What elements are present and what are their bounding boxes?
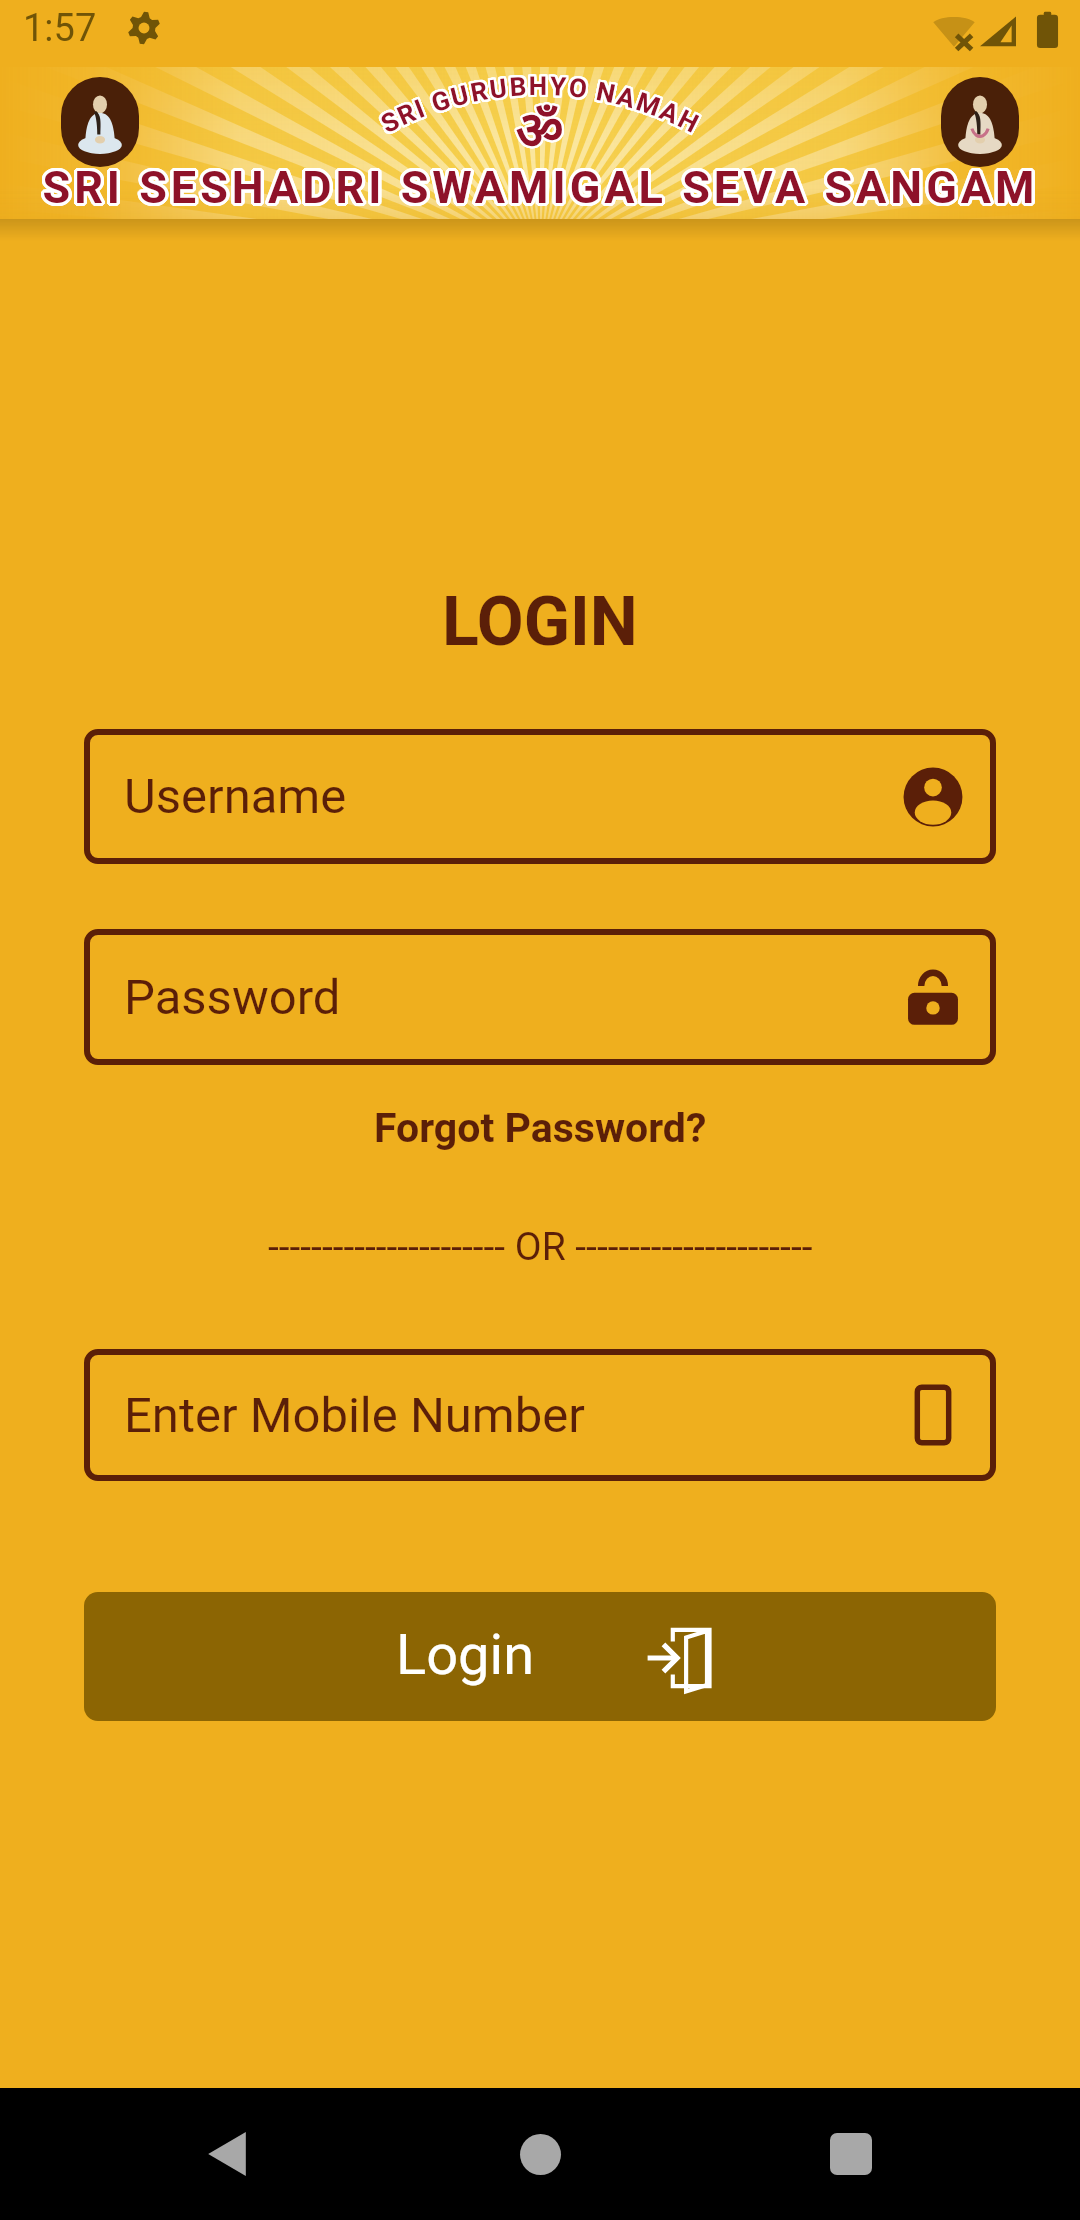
staticText: SRI SESHADRI SWAMIGAL SEVA SANGAM	[43, 163, 1040, 216]
staticText: Forgot Password?	[374, 1104, 707, 1152]
staticText: ॐ	[518, 102, 566, 170]
button[interactable]: Username	[84, 729, 996, 864]
staticText: ॐ	[515, 103, 563, 171]
staticText: Username	[124, 768, 347, 825]
staticText: ॐ	[517, 100, 565, 168]
staticText: SRI SESHADRI SWAMIGAL SEVA SANGAM	[43, 164, 1040, 217]
staticText: ॐ	[514, 100, 562, 168]
staticText: Enter Mobile Number	[124, 1387, 585, 1444]
staticText: Login	[396, 1622, 535, 1688]
staticText: ॐ	[518, 100, 566, 168]
button[interactable]: Back	[167, 2094, 287, 2214]
staticText: ॐ	[516, 103, 564, 171]
staticText: ॐ	[514, 102, 562, 170]
button[interactable]: Password	[84, 929, 996, 1065]
staticText: SRI SESHADRI SWAMIGAL SEVA SANGAM	[40, 162, 1037, 215]
staticText: SRI SESHADRI SWAMIGAL SEVA SANGAM	[43, 159, 1040, 212]
staticText: SRI SESHADRI SWAMIGAL SEVA SANGAM	[40, 163, 1037, 216]
staticText: ॐ	[516, 99, 564, 167]
staticText: SRI SESHADRI SWAMIGAL SEVA SANGAM	[45, 162, 1042, 215]
staticText: SRI SESHADRI SWAMIGAL SEVA SANGAM	[44, 162, 1041, 215]
staticText: ॐ	[517, 102, 565, 170]
staticText: Password	[124, 969, 341, 1026]
staticText: ---------------------- OR --------------…	[268, 1224, 813, 1270]
staticText: SRI SESHADRI SWAMIGAL SEVA SANGAM	[45, 161, 1042, 214]
staticText: SRI SESHADRI SWAMIGAL SEVA SANGAM	[44, 159, 1041, 212]
staticText: SRI SESHADRI SWAMIGAL SEVA SANGAM	[43, 158, 1040, 211]
staticText: 1:57	[23, 6, 97, 51]
staticText: ॐ	[515, 100, 563, 168]
staticText: ॐ	[517, 101, 565, 169]
staticText: SRI SESHADRI SWAMIGAL SEVA SANGAM	[39, 161, 1036, 214]
staticText: SRI SESHADRI SWAMIGAL SEVA SANGAM	[39, 162, 1036, 215]
staticText: ॐ	[516, 101, 564, 169]
staticText: SRI SESHADRI SWAMIGAL SEVA SANGAM	[44, 163, 1041, 216]
button[interactable]: Forgot Password?	[0, 1104, 1080, 1152]
staticText: ॐ	[518, 101, 566, 169]
staticText: SRI SESHADRI SWAMIGAL SEVA SANGAM	[44, 160, 1041, 213]
button[interactable]: Home	[480, 2094, 600, 2214]
button[interactable]: Recents	[791, 2094, 911, 2214]
staticText: ॐ	[515, 101, 563, 169]
staticText: SRI SESHADRI SWAMIGAL SEVA SANGAM	[40, 159, 1037, 212]
button[interactable]: Enter Mobile Number	[84, 1349, 996, 1481]
staticText: SRI SESHADRI SWAMIGAL SEVA SANGAM	[41, 163, 1038, 216]
staticText: ॐ	[517, 99, 565, 167]
staticText: ॐ	[516, 102, 564, 170]
staticText: SRI SESHADRI SWAMIGAL SEVA SANGAM	[41, 158, 1038, 211]
staticText: ॐ	[515, 102, 563, 170]
staticText: SRI SESHADRI SWAMIGAL SEVA SANGAM	[42, 158, 1039, 211]
staticText: SRI SESHADRI SWAMIGAL SEVA SANGAM	[42, 161, 1039, 214]
staticText: ॐ	[516, 100, 564, 168]
staticText: ॐ	[514, 101, 562, 169]
button[interactable]: Login	[84, 1592, 996, 1721]
staticText: SRI SESHADRI SWAMIGAL SEVA SANGAM	[40, 160, 1037, 213]
staticText: SRI SESHADRI SWAMIGAL SEVA SANGAM	[42, 164, 1039, 217]
staticText: LOGIN	[442, 582, 638, 662]
staticText: SRI SESHADRI SWAMIGAL SEVA SANGAM	[41, 164, 1038, 217]
staticText: SRI SESHADRI SWAMIGAL SEVA SANGAM	[39, 160, 1036, 213]
staticText: SRI SESHADRI SWAMIGAL SEVA SANGAM	[41, 159, 1038, 212]
staticText: ॐ	[515, 99, 563, 167]
staticText: SRI SESHADRI SWAMIGAL SEVA SANGAM	[45, 160, 1042, 213]
staticText: ॐ	[517, 103, 565, 171]
